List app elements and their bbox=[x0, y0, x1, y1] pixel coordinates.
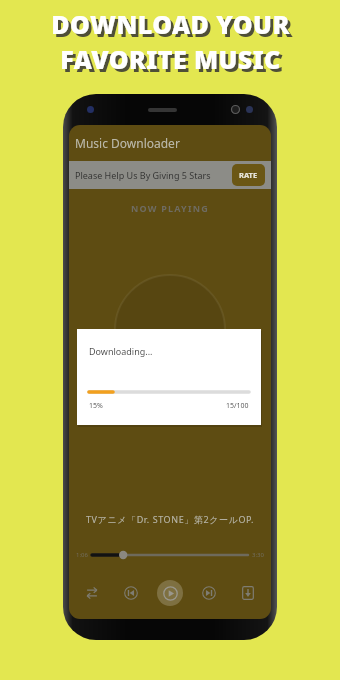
button[interactable] bbox=[92, 548, 248, 562]
staticText: FAVORITE MUSIC bbox=[63, 45, 284, 79]
button[interactable]: RATE bbox=[232, 164, 265, 186]
staticText: Downloading... bbox=[89, 345, 153, 357]
staticText: DOWNLOAD YOUR bbox=[54, 10, 293, 44]
staticText: Music Downloader bbox=[75, 135, 180, 151]
button[interactable]: Play bbox=[157, 580, 183, 606]
staticText: Please Help Us By Giving 5 Stars bbox=[75, 169, 211, 181]
button[interactable]: Please Help Us By Giving 5 Stars bbox=[69, 161, 271, 189]
button[interactable]: Music Downloader bbox=[69, 125, 271, 161]
staticText: DOWNLOAD YOUR bbox=[51, 7, 290, 41]
staticText: FAVORITE MUSIC bbox=[60, 42, 281, 76]
staticText: RATE bbox=[239, 170, 258, 180]
button[interactable]: Download bbox=[235, 580, 261, 606]
staticText: 3:30 bbox=[252, 551, 264, 559]
button[interactable]: Previous bbox=[118, 580, 144, 606]
staticText: 15% bbox=[89, 401, 103, 411]
staticText: NOW PLAYING bbox=[131, 202, 209, 214]
button[interactable]: Repeat bbox=[79, 580, 105, 606]
staticText: 15/100 bbox=[226, 401, 249, 411]
staticText: 1:06 bbox=[76, 551, 88, 559]
button[interactable]: Next bbox=[196, 580, 222, 606]
staticText: TVアニメ「Dr. STONE」第2クールOP. bbox=[86, 513, 254, 525]
